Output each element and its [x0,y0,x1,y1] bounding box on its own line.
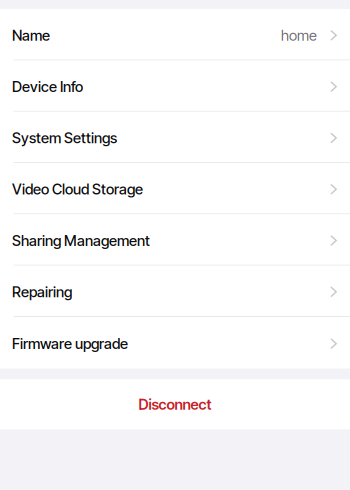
staticText: Sharing Management [12,232,150,249]
staticText: Firmware upgrade [12,335,128,352]
staticText: home [281,26,317,44]
button[interactable]: Name [0,9,350,60]
button[interactable]: Firmware upgrade [0,317,350,368]
staticText: Name [12,26,50,44]
button[interactable]: Disconnect [0,379,350,429]
staticText: Video Cloud Storage [12,180,143,198]
button[interactable]: System Settings [0,112,350,163]
staticText: System Settings [12,129,117,147]
staticText: Disconnect [138,395,211,413]
staticText: Repairing [12,283,72,301]
button[interactable]: Video Cloud Storage [0,163,350,214]
button[interactable]: Device Info [0,60,350,112]
staticText: Device Info [12,78,83,95]
button[interactable]: Repairing [0,266,350,317]
button[interactable]: Sharing Management [0,214,350,266]
